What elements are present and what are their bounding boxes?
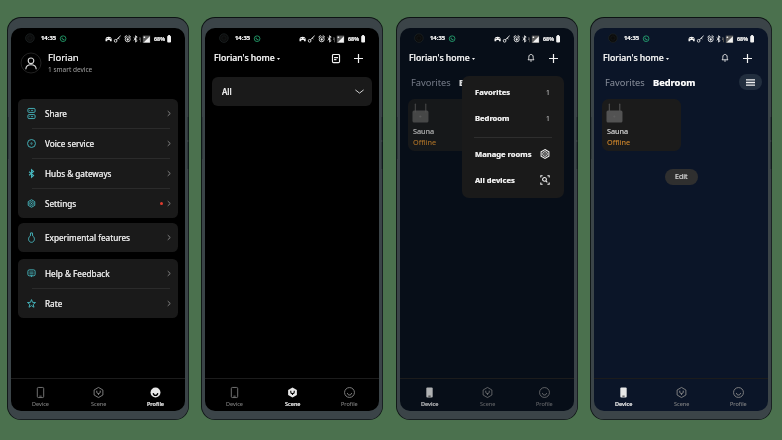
staticText: Sauna bbox=[413, 126, 435, 136]
staticText: Florian's home bbox=[603, 52, 664, 64]
staticText: 68% bbox=[154, 35, 166, 42]
staticText: 68% bbox=[737, 35, 749, 42]
staticText: Offline bbox=[607, 137, 631, 147]
staticText: Device bbox=[226, 400, 243, 407]
button[interactable]: Device bbox=[402, 378, 457, 411]
staticText: 14:35 bbox=[624, 34, 640, 42]
button[interactable]: Favorites bbox=[605, 76, 645, 89]
button[interactable]: Add bbox=[739, 50, 755, 66]
staticText: 1 bbox=[546, 114, 550, 123]
button[interactable]: Profile bbox=[711, 378, 766, 411]
button[interactable]: Rate bbox=[18, 289, 178, 318]
button[interactable]: Manage rooms bbox=[475, 141, 550, 167]
staticText: 1 bbox=[546, 88, 550, 97]
button[interactable]: Florian's home bbox=[214, 52, 280, 64]
button[interactable]: Menu bbox=[739, 74, 762, 90]
staticText: Experimental features bbox=[45, 232, 130, 243]
staticText: Florian's home bbox=[409, 52, 470, 64]
button[interactable]: Sauna bbox=[408, 99, 487, 151]
button[interactable]: All bbox=[212, 77, 372, 106]
staticText: Share bbox=[45, 108, 67, 119]
button[interactable]: Sauna bbox=[602, 99, 681, 151]
button[interactable]: Add bbox=[350, 50, 366, 66]
button[interactable]: Bedroom bbox=[653, 76, 696, 89]
button[interactable]: Device bbox=[13, 378, 68, 411]
staticText: Settings bbox=[45, 198, 77, 209]
button[interactable]: Profile bbox=[517, 378, 572, 411]
button[interactable]: Bedroom bbox=[475, 105, 550, 131]
staticText: Profile bbox=[730, 400, 747, 407]
button[interactable]: Settings bbox=[18, 189, 178, 218]
button[interactable]: Favorites bbox=[475, 79, 550, 105]
button[interactable]: Scene bbox=[71, 378, 126, 411]
staticText: Scene bbox=[480, 400, 496, 407]
staticText: Voice service bbox=[45, 138, 95, 149]
staticText: Scene bbox=[91, 400, 107, 407]
button[interactable]: Notifications bbox=[523, 50, 539, 66]
staticText: Florian's home bbox=[214, 52, 275, 64]
staticText: Profile bbox=[536, 400, 553, 407]
staticText: Sauna bbox=[607, 126, 629, 136]
button[interactable]: Scene bbox=[265, 378, 320, 411]
staticText: Scene bbox=[674, 400, 690, 407]
staticText: Manage rooms bbox=[475, 149, 532, 159]
staticText: 68% bbox=[348, 35, 360, 42]
button[interactable]: Scene bbox=[654, 378, 709, 411]
staticText: Profile bbox=[341, 400, 358, 407]
button[interactable]: Experimental features bbox=[18, 223, 178, 252]
staticText: Edit bbox=[675, 172, 688, 182]
button[interactable]: Favorites bbox=[411, 76, 451, 89]
button[interactable]: Florian's home bbox=[409, 52, 475, 64]
staticText: Favorites bbox=[475, 87, 511, 97]
button[interactable]: Add bbox=[545, 50, 561, 66]
staticText: 1 smart device bbox=[48, 65, 93, 74]
button[interactable]: Notes bbox=[328, 50, 344, 66]
staticText: All devices bbox=[475, 175, 515, 185]
button[interactable]: Voice service bbox=[18, 129, 178, 158]
button[interactable]: Profile bbox=[322, 378, 377, 411]
staticText: 68% bbox=[543, 35, 555, 42]
button[interactable]: All devices bbox=[475, 167, 550, 193]
button[interactable]: Help & Feedback bbox=[18, 259, 178, 288]
staticText: Offline bbox=[413, 137, 437, 147]
button[interactable]: Device bbox=[207, 378, 262, 411]
button[interactable]: Hubs & gateways bbox=[18, 159, 178, 188]
button[interactable]: Share bbox=[18, 99, 178, 128]
staticText: Device bbox=[32, 400, 49, 407]
staticText: Hubs & gateways bbox=[45, 168, 112, 179]
button[interactable]: Device bbox=[596, 378, 651, 411]
staticText: Help & Feedback bbox=[45, 268, 110, 279]
button[interactable]: Profile bbox=[128, 378, 183, 411]
staticText: Profile bbox=[147, 400, 165, 407]
button[interactable]: Edit bbox=[665, 169, 698, 185]
staticText: All bbox=[222, 86, 232, 97]
staticText: 14:35 bbox=[430, 34, 446, 42]
button[interactable]: Notifications bbox=[717, 50, 733, 66]
staticText: Scene bbox=[285, 400, 301, 407]
button[interactable]: Bedroom bbox=[459, 76, 502, 89]
staticText: 14:35 bbox=[235, 34, 251, 42]
button[interactable]: Scene bbox=[460, 378, 515, 411]
staticText: 14:35 bbox=[41, 34, 57, 42]
staticText: Florian bbox=[48, 51, 79, 64]
button[interactable]: Florian's home bbox=[603, 52, 669, 64]
staticText: Bedroom bbox=[475, 113, 510, 123]
staticText: Device bbox=[615, 400, 633, 407]
staticText: Rate bbox=[45, 298, 63, 309]
staticText: Device bbox=[421, 400, 439, 407]
